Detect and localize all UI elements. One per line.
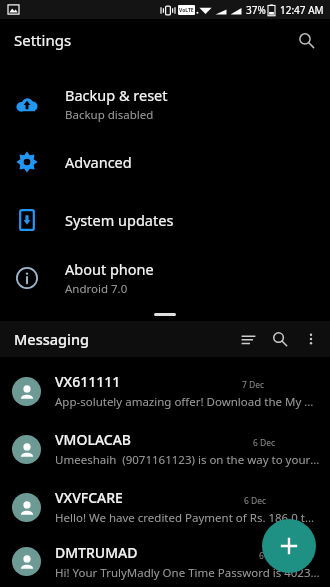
staticText: Hello! We have credited Payment of Rs. 1… (55, 510, 320, 526)
button[interactable]: About phone (0, 249, 330, 307)
staticText: 6 Dec (253, 437, 276, 449)
staticText: Hi! Your TrulyMadly One Time Password is… (55, 565, 320, 581)
button[interactable]: New message (262, 519, 316, 573)
staticText: App-solutely amazing offer! Download the… (55, 394, 320, 410)
button[interactable]: Advanced (0, 133, 330, 191)
button[interactable]: More options (296, 324, 326, 354)
staticText: Advanced (65, 152, 132, 172)
button[interactable]: VMOLACAB (0, 420, 330, 478)
button[interactable]: DMTRUMAD (0, 536, 330, 587)
staticText: Messaging (14, 329, 90, 349)
button[interactable]: VXVFCARE (0, 478, 330, 536)
staticText: VX611111 (55, 372, 121, 391)
staticText: DMTRUMAD (55, 543, 138, 562)
staticText: VoLTE (179, 7, 194, 14)
button[interactable]: Resize split screen (154, 313, 176, 316)
staticText: 37% (246, 3, 266, 17)
staticText: VXVFCARE (55, 488, 123, 507)
staticText: 6 Dec (244, 495, 267, 507)
staticText: VMOLACAB (55, 430, 132, 449)
staticText: Umeeshaih (9071161123) is on the way to … (55, 452, 320, 468)
button[interactable]: Filter (232, 323, 264, 355)
button[interactable]: Search settings (288, 22, 324, 58)
staticText: Backup & reset (65, 85, 168, 105)
staticText: 12:47 AM (280, 3, 324, 17)
staticText: 7 Dec (242, 379, 265, 391)
button[interactable]: Backup & reset (0, 75, 330, 133)
staticText: System updates (65, 210, 174, 230)
staticText: Backup disabled (65, 107, 154, 123)
staticText: About phone (65, 259, 154, 279)
staticText: Android 7.0 (65, 281, 128, 297)
button[interactable]: Search messages (264, 323, 296, 355)
staticText: Settings (14, 30, 72, 50)
button[interactable]: VX611111 (0, 362, 330, 420)
staticText: 6 Dec (259, 550, 282, 562)
button[interactable]: System updates (0, 191, 330, 249)
